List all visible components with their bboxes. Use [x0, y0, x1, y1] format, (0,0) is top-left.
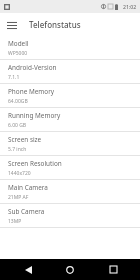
staticText: 7.1.1	[8, 74, 20, 81]
button[interactable]: Open navigation menu	[4, 17, 20, 33]
staticText: Android-Version	[8, 63, 57, 72]
button[interactable]: Sub Camera	[0, 204, 140, 228]
staticText: Running Memory	[8, 111, 61, 120]
button[interactable]: Back	[13, 259, 43, 280]
button[interactable]: Screen size	[0, 132, 140, 156]
button[interactable]: Modell	[0, 36, 140, 60]
staticText: WP5000	[8, 50, 28, 57]
staticText: 21:02	[123, 3, 137, 10]
staticText: Main Camera	[8, 183, 48, 192]
staticText: 1440x720	[8, 170, 31, 177]
button[interactable]: Android-Version	[0, 60, 140, 84]
button[interactable]: Recent apps	[98, 259, 128, 280]
button[interactable]: Main Camera	[0, 180, 140, 204]
staticText: 13MP	[8, 218, 22, 225]
staticText: Modell	[8, 39, 29, 48]
staticText: 6.00 GB	[8, 122, 27, 129]
staticText: Telefonstatus	[29, 19, 81, 30]
staticText: Screen size	[8, 135, 42, 144]
staticText: Phone Memory	[8, 87, 55, 96]
button[interactable]: Phone Memory	[0, 84, 140, 108]
button[interactable]: Home	[55, 259, 85, 280]
staticText: Sub Camera	[8, 207, 45, 216]
button[interactable]: Running Memory	[0, 108, 140, 132]
staticText: Screen Resolution	[8, 159, 62, 168]
staticText: 64.00GB	[8, 98, 28, 105]
staticText: 21MP AF	[8, 194, 29, 201]
button[interactable]: Screen Resolution	[0, 156, 140, 180]
staticText: 5.7 inch	[8, 146, 27, 153]
